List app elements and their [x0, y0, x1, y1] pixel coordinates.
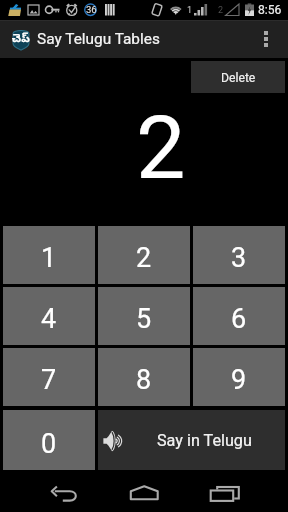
button[interactable]: Say in Telugu	[98, 410, 285, 471]
staticText: 4	[41, 303, 57, 335]
staticText: 8	[136, 364, 152, 396]
button[interactable]: 7	[3, 348, 95, 406]
button[interactable]: 2	[98, 226, 190, 284]
button[interactable]: 6	[193, 287, 285, 345]
other: Say in Telugu	[103, 430, 121, 452]
button[interactable]: More options	[252, 20, 280, 58]
staticText: 2	[136, 96, 186, 199]
button[interactable]: 8	[98, 348, 190, 406]
staticText: 1	[187, 5, 193, 16]
button[interactable]: Delete	[191, 61, 285, 93]
staticText: 8:56	[258, 3, 282, 17]
staticText: Say Telugu Tables	[37, 30, 160, 48]
staticText: 2	[218, 5, 224, 16]
staticText: 7	[41, 364, 57, 396]
staticText: చెప్	[12, 32, 30, 47]
button[interactable]: 4	[3, 287, 95, 345]
button[interactable]: 3	[193, 226, 285, 284]
button[interactable]: 9	[193, 348, 285, 406]
staticText: 0	[41, 428, 57, 460]
staticText: 5	[136, 303, 152, 335]
button[interactable]: Recent apps	[200, 470, 248, 512]
staticText: 9	[231, 364, 247, 396]
staticText: 1	[41, 242, 57, 274]
button[interactable]: Back	[40, 470, 88, 512]
button[interactable]: Home	[120, 470, 168, 512]
staticText: Delete	[221, 71, 256, 85]
staticText: 36	[86, 4, 97, 15]
button[interactable]: 1	[3, 226, 95, 284]
button[interactable]: 5	[98, 287, 190, 345]
staticText: 3	[231, 242, 247, 274]
staticText: 2	[136, 242, 152, 274]
staticText: 6	[231, 303, 247, 335]
button[interactable]: 0	[3, 410, 95, 471]
staticText: Say in Telugu	[157, 431, 252, 450]
